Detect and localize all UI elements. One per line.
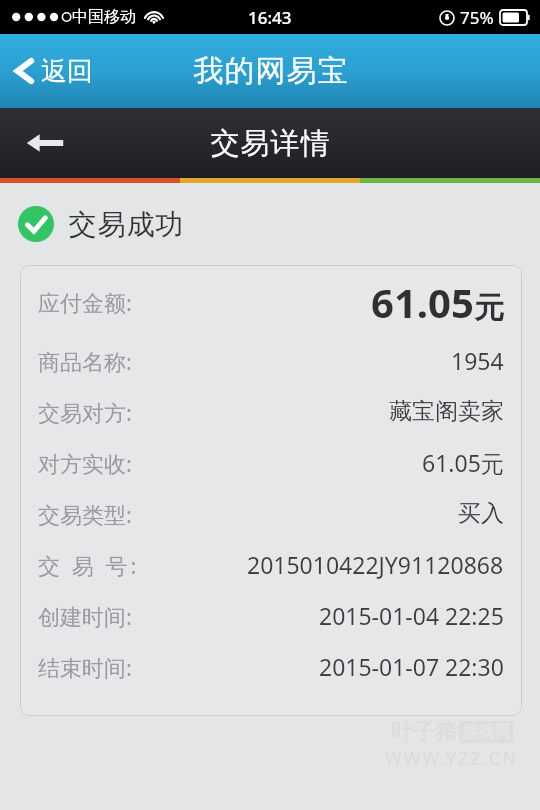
staticText: 交易详情 [210,125,330,162]
staticText: 对方实收: [38,448,132,478]
staticText: WWW.YZZ.CN [385,746,518,771]
staticText: 交易类型: [38,499,132,529]
staticText: 结束时间: [38,652,132,682]
staticText: 2015-01-07 22:30 [319,651,504,682]
staticText: 商品名称: [38,346,132,376]
staticText: 中国移动 [72,7,136,27]
staticText: 2015010422JY91120868 [247,549,504,580]
staticText: 买入 [458,499,504,528]
staticText: 交易成功 [68,207,184,242]
staticText: 我的网易宝 [193,52,348,90]
staticText: 1954 [451,345,504,376]
staticText: 藏宝阁卖家 [389,397,504,426]
staticText: 元 [474,289,504,327]
staticText: 61.05 [371,275,474,329]
staticText: 交易对方: [38,397,132,427]
button[interactable]: Back [0,108,90,178]
staticText: 61.05元 [422,447,504,478]
staticText: 16:43 [248,6,292,29]
staticText: 创建时间: [38,601,132,631]
staticText: 返回 [41,55,93,88]
staticText: 75% [460,6,494,29]
staticText: 交 易 号: [38,550,140,580]
staticText: 游戏网 [462,722,510,742]
staticText: 应付金额: [38,287,132,317]
button[interactable]: 返回 [0,34,107,108]
staticText: 叶子猪 [391,718,457,746]
staticText: 2015-01-04 22:25 [319,600,504,631]
